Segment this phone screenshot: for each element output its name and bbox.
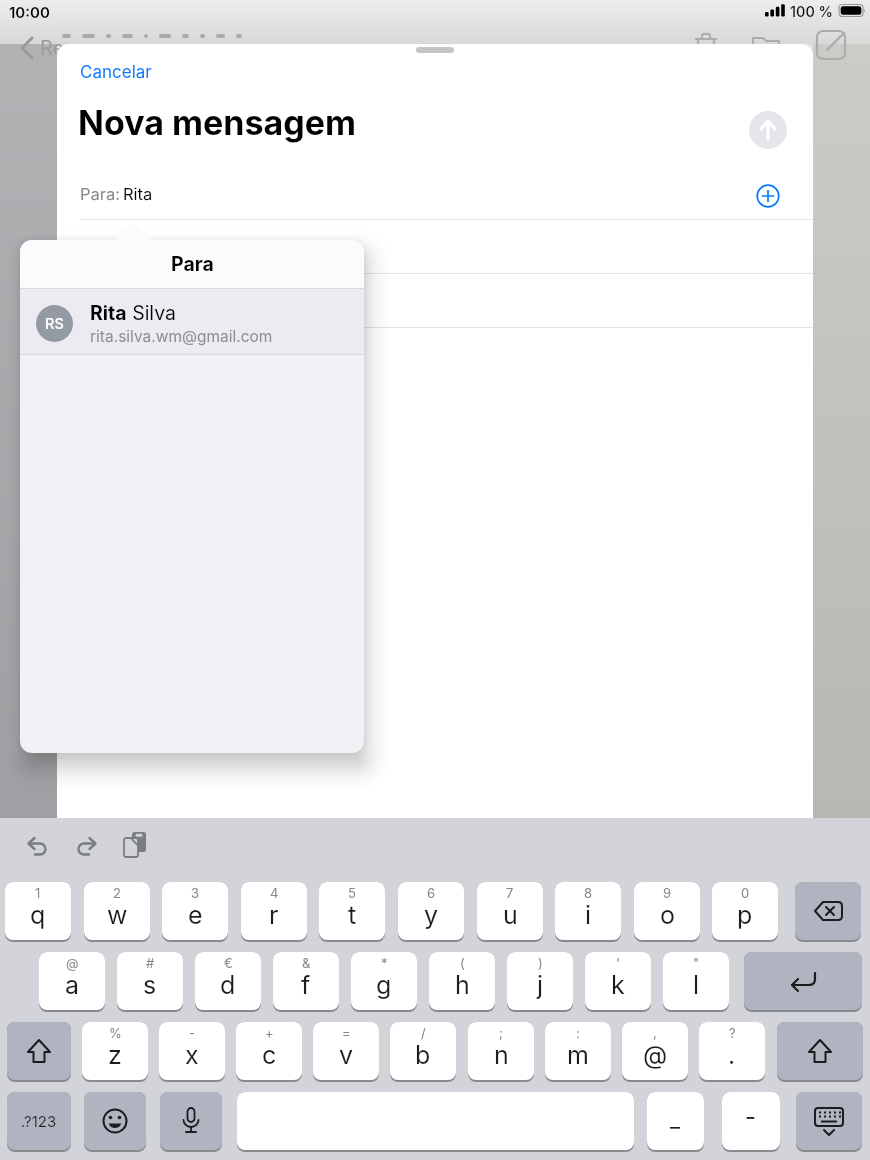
staticText: b	[415, 1040, 431, 1070]
staticText: )	[538, 955, 543, 971]
staticText: y	[424, 900, 439, 930]
staticText: RS	[45, 315, 64, 333]
staticText: ,	[653, 1025, 657, 1041]
staticText: 0	[741, 885, 750, 901]
button[interactable]	[84, 1092, 146, 1150]
button[interactable]: +	[236, 1022, 302, 1080]
button[interactable]: 4	[241, 882, 307, 940]
staticText: l	[693, 970, 700, 1000]
button[interactable]: )	[507, 952, 573, 1010]
button[interactable]: #	[117, 952, 183, 1010]
button[interactable]: :	[545, 1022, 611, 1080]
staticText: a	[65, 970, 80, 1000]
button[interactable]	[756, 184, 780, 208]
staticText: .	[728, 1040, 736, 1070]
staticText: p	[737, 900, 753, 930]
staticText: -	[189, 1025, 195, 1041]
button[interactable]	[795, 882, 861, 940]
staticText: Rita Silva	[90, 301, 176, 325]
staticText: 5	[348, 885, 356, 901]
staticText: &	[302, 955, 311, 971]
button[interactable]: Cancelar	[80, 62, 152, 83]
button[interactable]: /	[390, 1022, 456, 1080]
staticText: 7	[506, 885, 514, 901]
button[interactable]: @	[39, 952, 105, 1010]
button[interactable]: 9	[634, 882, 700, 940]
staticText: c	[262, 1040, 277, 1070]
staticText: 8	[584, 885, 593, 901]
staticText: _	[670, 1106, 681, 1133]
staticText: m	[567, 1040, 589, 1070]
button[interactable]: %	[82, 1022, 148, 1080]
staticText: Re	[40, 36, 65, 60]
staticText: o	[660, 900, 675, 930]
staticText: (	[460, 955, 465, 971]
button[interactable]	[749, 111, 787, 149]
staticText: Para:	[80, 184, 121, 204]
button[interactable]: -	[722, 1092, 780, 1150]
button[interactable]	[160, 1092, 222, 1150]
button[interactable]: RS	[20, 289, 364, 354]
staticText: 3	[191, 885, 200, 901]
staticText: 6	[427, 885, 436, 901]
staticText: k	[611, 970, 625, 1000]
button[interactable]: (	[429, 952, 495, 1010]
staticText: d	[220, 970, 236, 1000]
staticText: Cancelar	[80, 62, 152, 83]
button[interactable]	[7, 1022, 71, 1080]
staticText: '	[616, 955, 620, 971]
button[interactable]: €	[195, 952, 261, 1010]
staticText: :	[576, 1025, 580, 1041]
button[interactable]: 2	[84, 882, 150, 940]
staticText: %	[109, 1025, 122, 1041]
staticText: s	[143, 970, 157, 1000]
button[interactable]: ?	[699, 1022, 765, 1080]
staticText: 4	[270, 885, 279, 901]
button[interactable]: 1	[5, 882, 71, 940]
staticText: .?123	[21, 1112, 57, 1130]
button[interactable]	[744, 952, 862, 1010]
staticText: *	[381, 955, 388, 971]
button[interactable]: 5	[319, 882, 385, 940]
button[interactable]: ,	[622, 1022, 688, 1080]
button[interactable]: '	[585, 952, 651, 1010]
button[interactable]: 7	[477, 882, 543, 940]
staticText: j	[537, 970, 544, 1000]
staticText: r	[269, 900, 279, 930]
staticText: t	[348, 900, 357, 930]
button[interactable]: -	[159, 1022, 225, 1080]
staticText: x	[185, 1040, 199, 1070]
staticText: g	[376, 970, 392, 1000]
staticText: -	[745, 1102, 757, 1131]
button[interactable]: &	[273, 952, 339, 1010]
button[interactable]: _	[647, 1092, 704, 1150]
staticText: =	[342, 1025, 351, 1041]
button[interactable]: 8	[555, 882, 621, 940]
staticText: i	[585, 900, 592, 930]
button[interactable]: =	[313, 1022, 379, 1080]
staticText: v	[339, 1040, 354, 1070]
staticText: @	[66, 955, 79, 971]
staticText: q	[30, 900, 46, 930]
staticText: 2	[113, 885, 121, 901]
button[interactable]: 6	[398, 882, 464, 940]
staticText: #	[146, 955, 155, 971]
button[interactable]: 3	[162, 882, 228, 940]
staticText: Nova mensagem	[78, 102, 356, 143]
staticText: 9	[663, 885, 672, 901]
button[interactable]	[777, 1022, 863, 1080]
staticText: e	[188, 900, 203, 930]
button[interactable]: .?123	[7, 1092, 71, 1150]
button[interactable]	[237, 1092, 634, 1150]
button[interactable]	[796, 1092, 862, 1150]
staticText: ?	[729, 1025, 736, 1041]
button[interactable]: ;	[468, 1022, 534, 1080]
staticText: 100 %	[790, 3, 834, 21]
button[interactable]: *	[351, 952, 417, 1010]
button[interactable]: Para:	[57, 173, 813, 217]
staticText: u	[503, 900, 518, 930]
staticText: 1	[35, 885, 41, 901]
button[interactable]: "	[663, 952, 729, 1010]
staticText: h	[455, 970, 470, 1000]
button[interactable]: 0	[712, 882, 778, 940]
